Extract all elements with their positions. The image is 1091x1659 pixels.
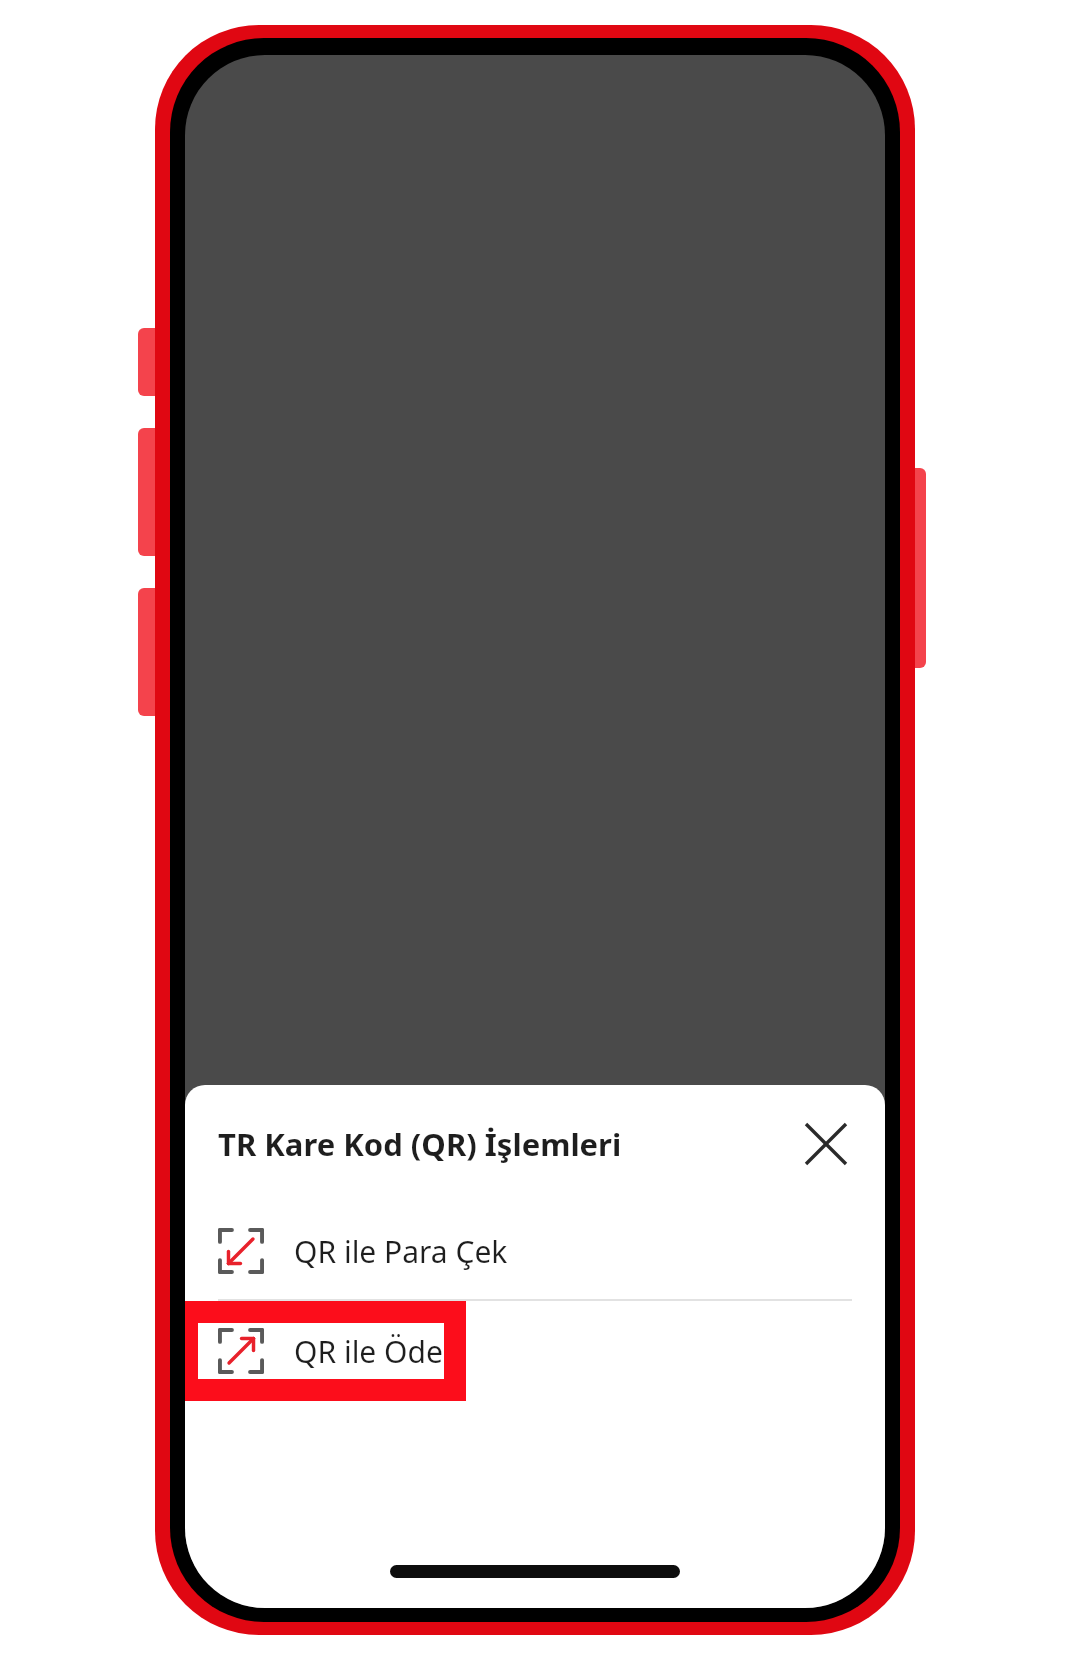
staticText: TR Kare Kod (QR) İşlemleri (218, 1123, 622, 1165)
staticText: QR ile Para Çek (294, 1231, 508, 1272)
staticText: QR ile Öde (294, 1331, 443, 1372)
button[interactable]: QR ile Öde (185, 1301, 885, 1401)
button[interactable]: Kapat (795, 1113, 857, 1175)
button[interactable]: QR ile Para Çek (185, 1203, 885, 1299)
